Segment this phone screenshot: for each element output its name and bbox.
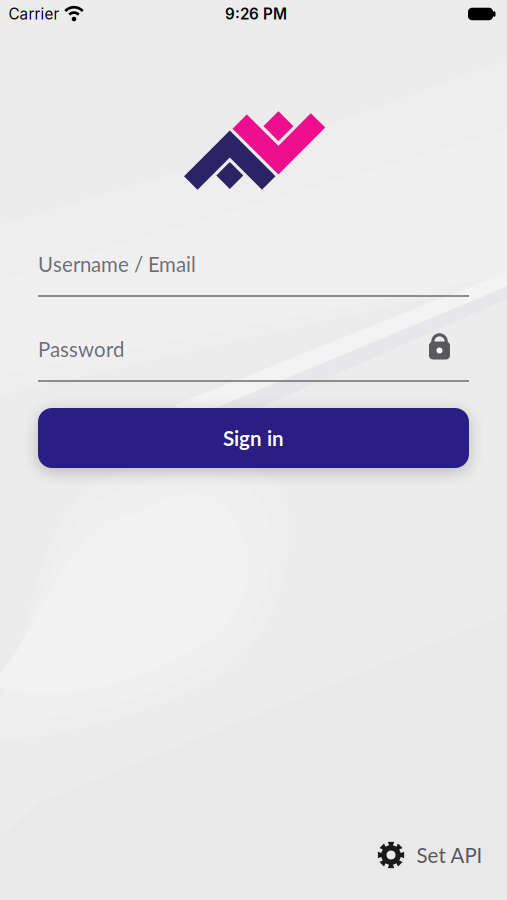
button[interactable]: Sign in: [38, 408, 469, 468]
button[interactable]: Set API: [377, 841, 482, 868]
staticText: Carrier: [8, 5, 59, 23]
button[interactable]: Password: [38, 329, 469, 385]
button[interactable]: Username / Email: [38, 244, 469, 300]
staticText: 9:26 PM: [225, 5, 287, 23]
staticText: Set API: [416, 843, 482, 867]
staticText: Password: [38, 337, 124, 361]
staticText: Sign in: [223, 426, 284, 450]
staticText: Username / Email: [38, 252, 196, 276]
